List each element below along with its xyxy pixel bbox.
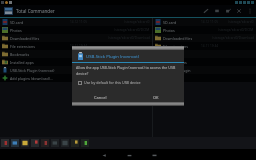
staticText: Use by default for this USB device xyxy=(84,80,141,85)
button[interactable]: Home xyxy=(125,151,133,159)
staticText: USB-Stick Plugin (nonroot) xyxy=(163,68,201,73)
staticText: Cancel xyxy=(94,95,107,100)
button[interactable]: Installed apps xyxy=(153,58,256,66)
staticText: USB-Stick Plugin (nonroot) xyxy=(10,68,55,73)
button[interactable]: Recent app xyxy=(61,139,69,147)
staticText: /storage/sdcard0/Download xyxy=(212,36,254,40)
button[interactable]: Select all xyxy=(211,5,222,17)
staticText: OK xyxy=(153,95,159,100)
staticText: Photos xyxy=(10,28,22,33)
button[interactable]: OK xyxy=(128,92,184,102)
button[interactable]: File extensions xyxy=(0,42,152,50)
staticText: Total Commander xyxy=(16,8,55,14)
button[interactable]: Use by default for this USB device xyxy=(78,80,141,85)
button[interactable]: Add plugins (download)... xyxy=(0,74,152,82)
button[interactable]: Recent app xyxy=(21,139,29,147)
staticText: File extensions xyxy=(10,44,35,49)
staticText: Photos xyxy=(163,28,175,33)
button[interactable]: SD-card xyxy=(153,18,256,26)
button[interactable]: Recent app xyxy=(71,139,79,147)
button[interactable]: Photos xyxy=(153,26,256,34)
staticText: Allow the app USB-Stick Plugin (nonroot)… xyxy=(76,65,182,76)
button[interactable]: Bookmarks xyxy=(153,50,256,58)
staticText: 14.12 11:05 xyxy=(70,20,88,24)
staticText: Downloaded files xyxy=(163,36,193,41)
button[interactable]: Close xyxy=(233,5,244,17)
staticText: Installed apps xyxy=(10,60,34,65)
button[interactable]: Recent apps xyxy=(150,151,158,159)
button[interactable]: Recent app xyxy=(81,139,89,147)
staticText: Bookmarks xyxy=(10,52,30,57)
staticText: 14.12 11:05 xyxy=(201,20,219,24)
button[interactable]: Edit xyxy=(200,5,211,17)
button[interactable]: Installed apps xyxy=(0,58,152,66)
button[interactable]: Back xyxy=(100,151,108,159)
staticText: Add plugins (download)... xyxy=(10,76,53,81)
button[interactable]: Recent app xyxy=(1,139,9,147)
button[interactable]: More options xyxy=(244,5,255,17)
button[interactable]: Downloaded files xyxy=(0,34,152,42)
staticText: Downloaded files xyxy=(10,36,40,41)
staticText: /storage/sdcard0/DCIM xyxy=(218,28,254,32)
staticText: Installed apps xyxy=(163,60,187,65)
button[interactable]: Copy xyxy=(222,5,233,17)
staticText: SD-card xyxy=(10,20,24,25)
button[interactable]: Recent app xyxy=(41,139,49,147)
staticText: /storage/sdcard0/Download xyxy=(108,36,150,40)
button[interactable]: Downloaded files xyxy=(153,34,256,42)
staticText: SD-card xyxy=(163,20,177,25)
button[interactable]: Bookmarks xyxy=(0,50,152,58)
staticText: 14.11 19:44 xyxy=(201,44,219,48)
button[interactable]: Photos xyxy=(0,26,152,34)
button[interactable]: Recent app xyxy=(11,139,19,147)
button[interactable]: USB-Stick Plugin (nonroot) xyxy=(0,66,152,74)
staticText: 14.11 19:44 xyxy=(70,44,88,48)
button[interactable]: Recent app xyxy=(31,139,39,147)
button[interactable]: USB-Stick Plugin (nonroot) xyxy=(153,66,256,74)
staticText: File extensions xyxy=(163,44,188,49)
button[interactable]: File extensions xyxy=(153,42,256,50)
button[interactable]: SD-card xyxy=(0,18,152,26)
button[interactable]: Recent app xyxy=(51,139,59,147)
staticText: USB-Stick Plugin (nonroot) xyxy=(86,53,139,59)
button[interactable]: Add plugins (download)... xyxy=(153,74,256,82)
staticText: /storage/sdcard0 xyxy=(124,20,150,24)
staticText: /storage/sdcard0 xyxy=(228,20,254,24)
staticText: /storage/sdcard0/DCIM xyxy=(114,28,150,32)
staticText: Add plugins (download)... xyxy=(163,76,201,81)
button[interactable]: Cancel xyxy=(72,92,128,102)
